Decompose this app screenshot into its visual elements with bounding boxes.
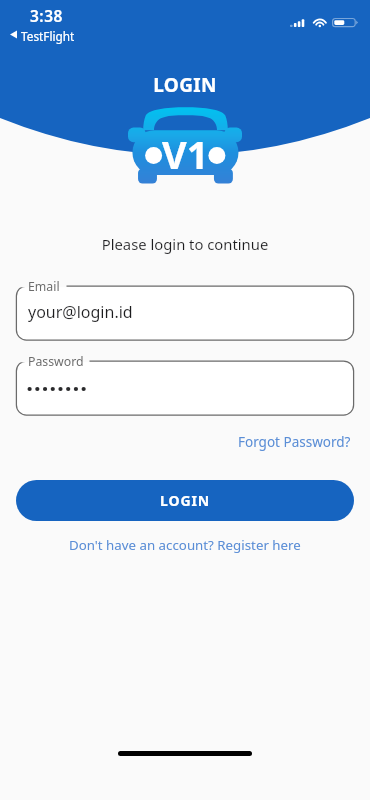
staticText: Forgot Password?: [238, 433, 351, 451]
staticText: Email: [28, 278, 60, 295]
staticText: V1: [162, 128, 209, 180]
button[interactable]: Forgot Password?: [236, 431, 353, 453]
button[interactable]: LOGIN: [16, 480, 354, 521]
staticText: TestFlight: [21, 28, 75, 44]
staticText: Please login to continue: [0, 234, 370, 254]
staticText: 3:38: [30, 5, 63, 26]
staticText: Password: [28, 353, 84, 370]
staticText: LOGIN: [0, 72, 370, 98]
staticText: Don't have an account? Register here: [69, 536, 301, 554]
staticText: LOGIN: [160, 491, 211, 510]
button[interactable]: Don't have an account? Register here: [65, 532, 305, 558]
staticText: your@login.id: [28, 301, 133, 323]
